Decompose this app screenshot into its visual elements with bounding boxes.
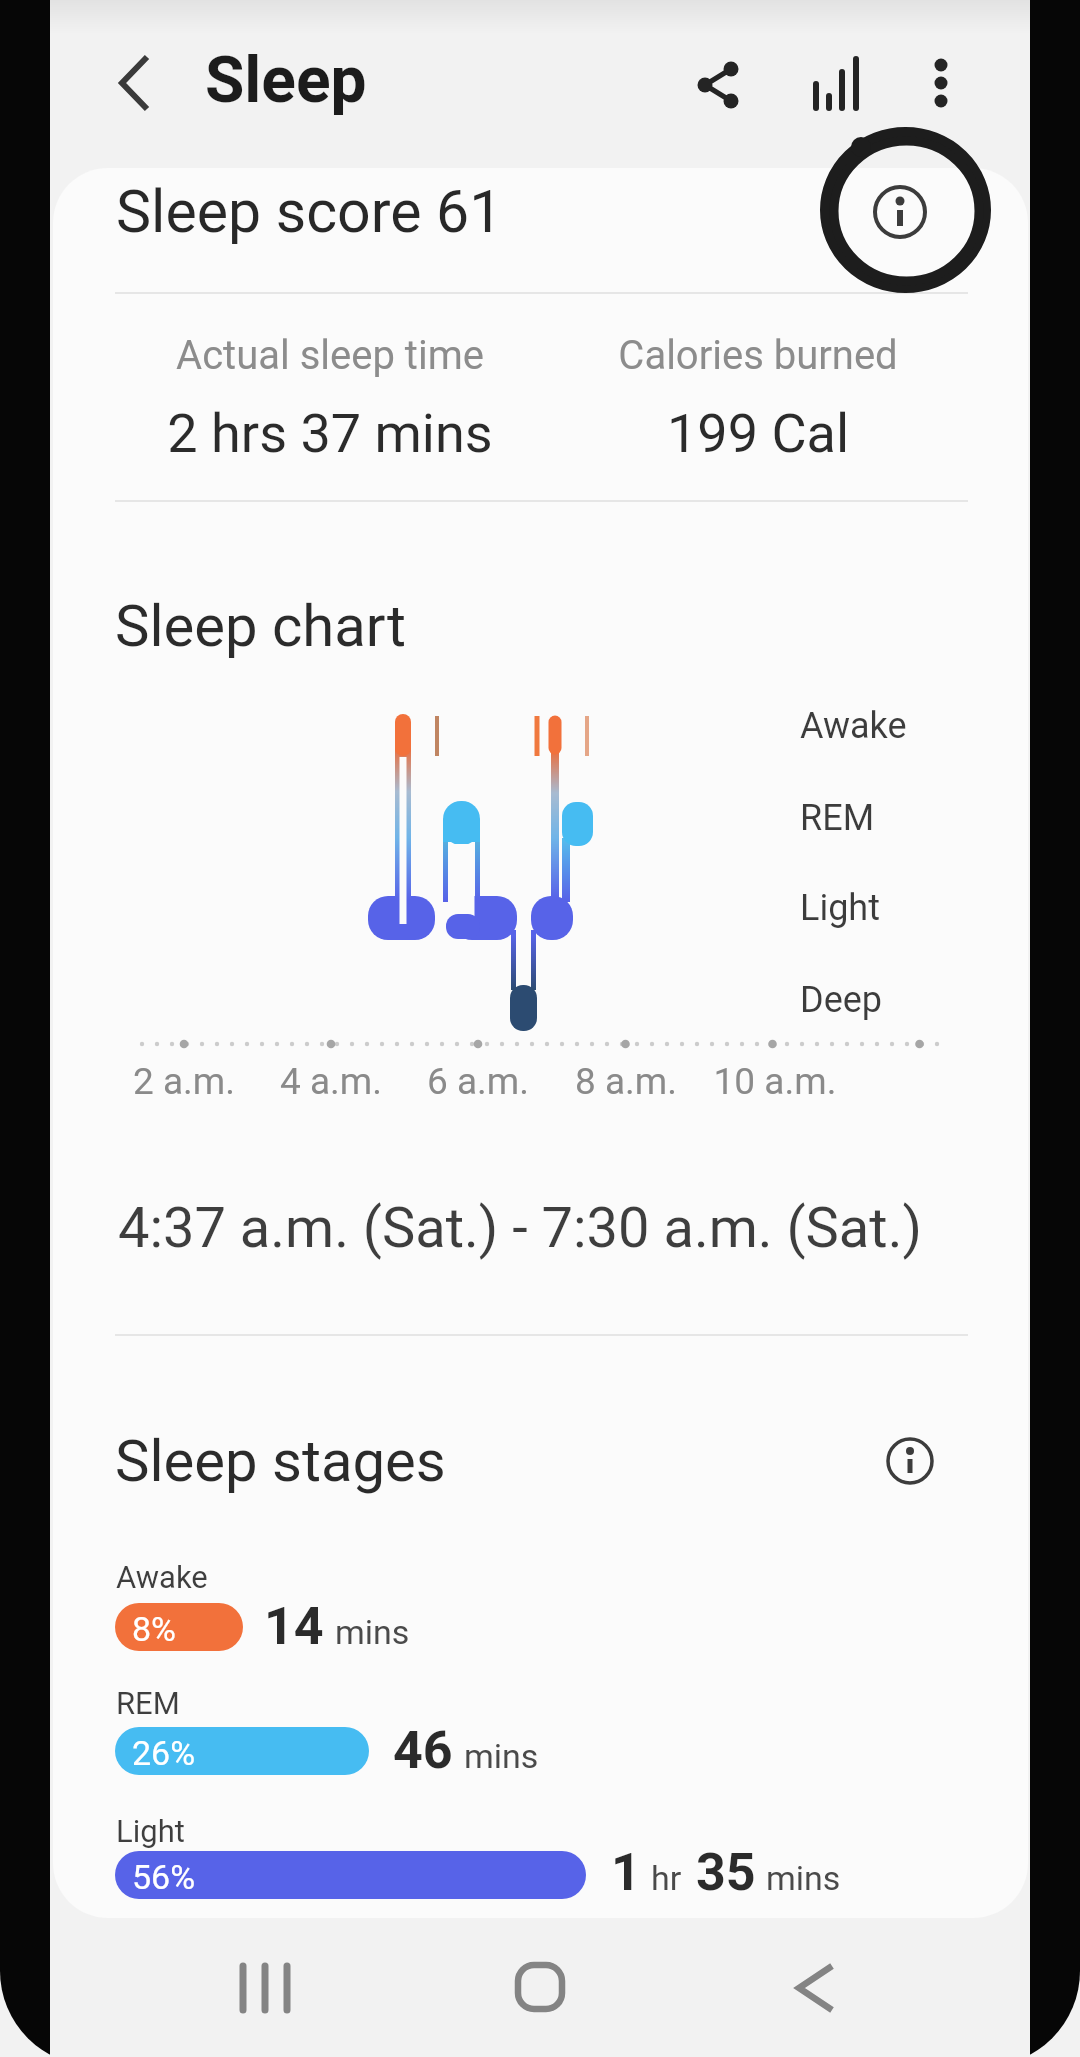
button[interactable]	[100, 50, 170, 120]
staticText: Awake	[116, 1559, 208, 1595]
staticText: 35	[696, 1842, 756, 1903]
staticText: 6 a.m.	[398, 1060, 558, 1103]
staticText: 46	[393, 1720, 453, 1781]
button[interactable]	[688, 52, 750, 118]
staticText: REM	[116, 1685, 180, 1721]
staticText: Calories burned	[538, 332, 978, 379]
button[interactable]	[780, 1952, 850, 2022]
staticText: Light	[116, 1813, 185, 1849]
button[interactable]	[870, 182, 930, 242]
staticText: Sleep chart	[115, 592, 406, 660]
staticText: 10 a.m.	[695, 1060, 855, 1103]
staticText: Sleep score 61	[116, 177, 503, 246]
button[interactable]	[228, 1952, 304, 2022]
staticText: REM	[800, 797, 875, 839]
staticText: 8%	[132, 1609, 177, 1649]
staticText: 1	[611, 1842, 641, 1903]
staticText: mins	[335, 1612, 410, 1652]
staticText: 199 Cal	[538, 402, 978, 465]
staticText: 8 a.m.	[546, 1060, 706, 1103]
staticText: 4 a.m.	[251, 1060, 411, 1103]
staticText: Deep	[800, 979, 883, 1021]
staticText: 56%	[132, 1857, 196, 1897]
staticText: 2 hrs 37 mins	[110, 402, 550, 465]
staticText: hr	[651, 1858, 682, 1898]
staticText: mins	[766, 1858, 841, 1898]
button[interactable]	[806, 48, 868, 114]
staticText: 2 a.m.	[104, 1060, 264, 1103]
staticText: 4:37 a.m. (Sat.) - 7:30 a.m. (Sat.)	[118, 1195, 922, 1261]
button[interactable]	[884, 1435, 936, 1487]
staticText: Sleep	[205, 43, 367, 118]
staticText: Sleep stages	[115, 1427, 446, 1495]
staticText: Awake	[800, 705, 907, 747]
button[interactable]	[916, 48, 966, 114]
staticText: Light	[800, 887, 880, 929]
staticText: 26%	[132, 1733, 196, 1773]
staticText: 14	[264, 1596, 324, 1657]
staticText: mins	[464, 1736, 539, 1776]
button[interactable]	[510, 1955, 570, 2017]
staticText: Actual sleep time	[110, 332, 550, 379]
